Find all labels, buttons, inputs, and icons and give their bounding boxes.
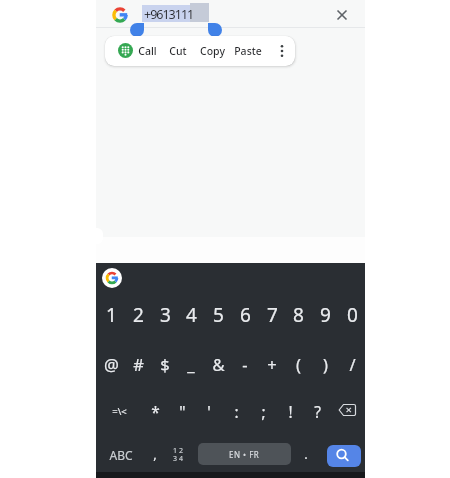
button[interactable]: !: [277, 400, 303, 422]
button[interactable]: [327, 445, 361, 467]
button[interactable]: (: [285, 352, 311, 376]
staticText: -: [242, 353, 248, 375]
staticText: 3: [160, 302, 171, 328]
staticText: +: [267, 353, 277, 375]
button[interactable]: 6: [232, 301, 258, 329]
button[interactable]: _: [178, 352, 204, 376]
button[interactable]: +: [259, 352, 285, 376]
button[interactable]: *: [142, 400, 168, 422]
button[interactable]: :: [223, 400, 249, 422]
button[interactable]: ABC: [104, 446, 138, 463]
staticText: /: [349, 353, 356, 375]
staticText: ': [207, 401, 211, 422]
button[interactable]: 3: [152, 301, 178, 329]
button[interactable]: ,: [147, 444, 163, 463]
staticText: 6: [240, 302, 251, 328]
staticText: #: [133, 353, 144, 375]
button[interactable]: 0: [339, 301, 365, 329]
button[interactable]: EN • FR: [198, 443, 291, 465]
staticText: Cut: [169, 44, 187, 58]
button[interactable]: $: [152, 352, 178, 376]
staticText: 1: [106, 302, 117, 328]
staticText: &: [212, 353, 225, 375]
button[interactable]: Cut: [163, 43, 193, 58]
staticText: 7: [267, 302, 278, 328]
staticText: @: [104, 353, 119, 375]
button[interactable]: =\<: [104, 404, 134, 418]
staticText: 2: [133, 302, 144, 328]
staticText: 1 2 3 4: [173, 446, 183, 463]
button[interactable]: ;: [250, 400, 276, 422]
button[interactable]: [118, 43, 133, 58]
button[interactable]: Call: [132, 43, 162, 58]
staticText: ;: [261, 401, 266, 422]
staticText: _: [187, 353, 195, 375]
button[interactable]: [338, 403, 357, 417]
staticText: 9: [320, 302, 331, 328]
staticText: ": [179, 401, 186, 422]
button[interactable]: &: [205, 352, 231, 376]
staticText: *: [151, 401, 160, 422]
button[interactable]: -: [232, 352, 258, 376]
button[interactable]: 4: [178, 301, 204, 329]
button[interactable]: Paste: [230, 43, 266, 58]
button[interactable]: Copy: [195, 43, 229, 58]
button[interactable]: 9: [312, 301, 338, 329]
staticText: ABC: [109, 447, 133, 463]
button[interactable]: .: [298, 444, 314, 463]
button[interactable]: 1: [98, 301, 124, 329]
button[interactable]: ): [312, 352, 338, 376]
staticText: ): [323, 353, 328, 375]
staticText: Copy: [200, 44, 225, 58]
staticText: Paste: [234, 44, 262, 58]
staticText: Call: [138, 44, 157, 58]
staticText: +9613111: [144, 6, 194, 23]
button[interactable]: 5: [205, 301, 231, 329]
button[interactable]: ": [169, 400, 195, 422]
staticText: .: [304, 445, 308, 463]
staticText: ,: [153, 445, 157, 463]
button[interactable]: 8: [285, 301, 311, 329]
staticText: =\<: [112, 405, 127, 418]
button[interactable]: [277, 44, 287, 58]
staticText: 0: [347, 302, 358, 328]
staticText: EN • FR: [229, 449, 260, 460]
button[interactable]: ': [196, 400, 222, 422]
staticText: 8: [293, 302, 304, 328]
button[interactable]: @: [98, 352, 124, 376]
button[interactable]: [336, 9, 348, 21]
button[interactable]: 7: [259, 301, 285, 329]
staticText: 5: [213, 302, 224, 328]
staticText: 4: [186, 302, 197, 328]
button[interactable]: #: [125, 352, 151, 376]
staticText: :: [234, 401, 239, 422]
staticText: (: [296, 353, 301, 375]
button[interactable]: 2: [125, 301, 151, 329]
button[interactable]: 1 2 3 4: [167, 444, 188, 464]
staticText: !: [288, 401, 293, 422]
button[interactable]: [102, 268, 122, 288]
staticText: $: [160, 353, 170, 375]
button[interactable]: /: [339, 352, 365, 376]
staticText: ?: [314, 401, 321, 422]
button[interactable]: ?: [304, 400, 330, 422]
